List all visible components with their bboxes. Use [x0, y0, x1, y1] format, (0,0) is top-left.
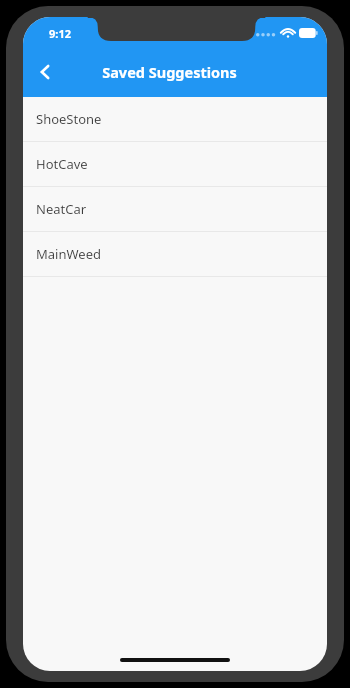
staticText: ShoeStone: [36, 110, 102, 128]
button[interactable]: MainWeed: [23, 232, 327, 277]
staticText: MainWeed: [36, 245, 101, 263]
button[interactable]: ShoeStone: [23, 97, 327, 142]
staticText: Saved Suggestions: [102, 62, 237, 82]
button[interactable]: NeatCar: [23, 187, 327, 232]
staticText: HotCave: [36, 155, 88, 173]
button[interactable]: Back: [23, 50, 67, 94]
staticText: 9:12: [49, 26, 71, 41]
staticText: NeatCar: [36, 200, 87, 218]
button[interactable]: HotCave: [23, 142, 327, 187]
